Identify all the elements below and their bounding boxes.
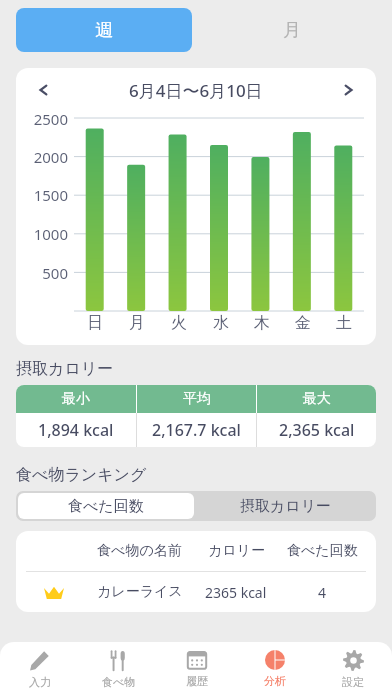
button[interactable]: 月 [192,8,392,52]
staticText: カロリー [208,542,265,560]
staticText: 摂取カロリー [240,497,332,516]
staticText: 食べ物 [102,675,136,689]
button[interactable]: 摂取カロリー [196,491,376,521]
staticText: 平均 [183,390,211,408]
staticText: 月 [283,19,301,42]
staticText: 日 [87,313,103,333]
staticText: 水 [213,313,229,333]
staticText: 2500 [22,109,68,129]
staticText: 1,894 kcal [38,419,114,441]
staticText: 最小 [62,390,90,408]
button[interactable]: 設定 [314,642,392,696]
button[interactable]: 前の週 [16,68,70,112]
staticText: 1500 [22,185,68,205]
staticText: 月 [129,313,145,333]
staticText: 1000 [22,224,68,244]
button[interactable]: 次の週 [322,68,376,112]
staticText: 分析 [264,674,286,688]
staticText: 土 [336,313,352,333]
staticText: 木 [254,313,270,333]
staticText: 食べた回数 [68,497,144,516]
staticText: 食べ物の名前 [97,542,182,560]
staticText: 6月4日〜6月10日 [129,79,263,102]
staticText: 設定 [342,675,364,689]
staticText: 4 [318,583,327,602]
staticText: 食べた回数 [287,542,358,560]
staticText: 入力 [29,675,51,689]
button[interactable]: 食べ物 [79,642,158,696]
staticText: カレーライス [97,583,183,601]
staticText: 2,167.7 kcal [152,419,241,441]
button[interactable]: 分析 [236,642,314,696]
staticText: 2365 kcal [205,583,267,602]
staticText: 履歴 [186,674,208,688]
staticText: 2,365 kcal [279,419,355,441]
staticText: 最大 [303,390,331,408]
staticText: 摂取カロリー [16,359,114,379]
staticText: 2000 [22,147,68,167]
button[interactable]: 入力 [0,642,79,696]
button[interactable]: 週 [16,8,192,52]
staticText: 500 [22,263,68,283]
button[interactable]: 履歴 [158,642,236,696]
staticText: 金 [295,313,311,333]
button[interactable]: カレーライス [24,572,368,612]
staticText: 週 [95,19,113,42]
staticText: 食べ物ランキング [16,465,147,485]
staticText: 火 [171,313,187,333]
button[interactable]: 食べた回数 [18,493,194,519]
